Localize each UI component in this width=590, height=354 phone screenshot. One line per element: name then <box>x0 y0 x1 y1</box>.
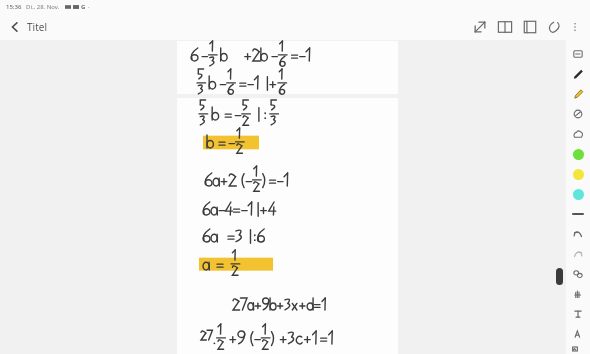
staticText: G <box>81 3 86 11</box>
button[interactable]: Leiste verschieben <box>556 268 563 285</box>
button[interactable]: Text <box>568 304 588 324</box>
button[interactable]: Auswahl <box>568 44 588 64</box>
button[interactable]: Schrift <box>568 324 588 344</box>
button[interactable]: Strichstärke <box>568 204 588 224</box>
button[interactable]: Wiederholen <box>568 244 588 264</box>
button[interactable] <box>177 41 398 94</box>
button[interactable]: Gelb <box>568 164 588 184</box>
button[interactable]: Stift <box>568 64 588 84</box>
button[interactable]: Hand <box>568 284 588 304</box>
button[interactable]: Grün <box>568 144 588 164</box>
button[interactable]: Vollbild <box>469 16 491 38</box>
staticText: · <box>88 3 90 11</box>
button[interactable]: Rückgängig <box>568 224 588 244</box>
button[interactable]: Eine Seite <box>519 16 541 38</box>
button[interactable]: Form <box>568 124 588 144</box>
staticText: 15:36 <box>6 3 22 11</box>
button[interactable]: Textmarker <box>568 84 588 104</box>
button[interactable]: Bild <box>568 344 588 354</box>
button[interactable] <box>177 98 398 354</box>
button[interactable]: Titel <box>5 19 49 35</box>
staticText: Titel <box>27 20 47 34</box>
button[interactable]: Zwei Seiten <box>494 16 516 38</box>
staticText: Di., 28. Nov. <box>26 3 60 11</box>
button[interactable]: Anhang <box>544 16 566 38</box>
button[interactable]: Radierer <box>568 104 588 124</box>
button[interactable]: Mehr Optionen <box>567 19 583 35</box>
button[interactable]: Verknüpfen <box>568 264 588 284</box>
button[interactable]: Türkis <box>568 184 588 204</box>
